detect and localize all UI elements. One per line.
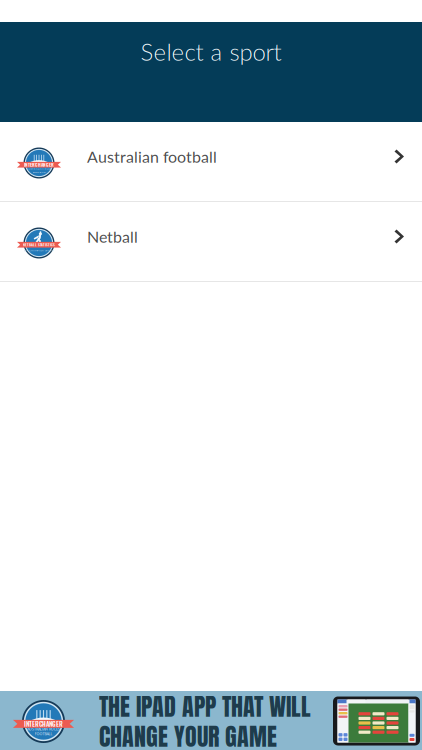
staticText: FOOTBALL (32, 170, 45, 174)
staticText: BY CHAMPION SPORT (24, 249, 54, 252)
button[interactable]: BY CHAMPION SPORT (0, 202, 422, 282)
staticText: Australian football (87, 147, 217, 166)
staticText: INTERCHANGER (24, 161, 54, 168)
staticText: AUSTRALIAN RULES (26, 167, 51, 170)
button[interactable]: AUSTRALIAN RULES (0, 122, 422, 202)
button[interactable]: AUSTRALIAN RULES (0, 691, 422, 750)
staticText: NETBALL STATISTICS (23, 242, 55, 247)
staticText: INTERCHANGER (24, 719, 63, 728)
staticText: CHANGE YOUR GAME (99, 718, 277, 750)
staticText: THE IPAD APP THAT WILL (99, 688, 311, 725)
staticText: Select a sport (140, 37, 281, 66)
staticText: AUSTRALIAN RULES (27, 727, 60, 731)
staticText: FOOTBALL (34, 732, 52, 736)
staticText: Netball (87, 227, 138, 246)
